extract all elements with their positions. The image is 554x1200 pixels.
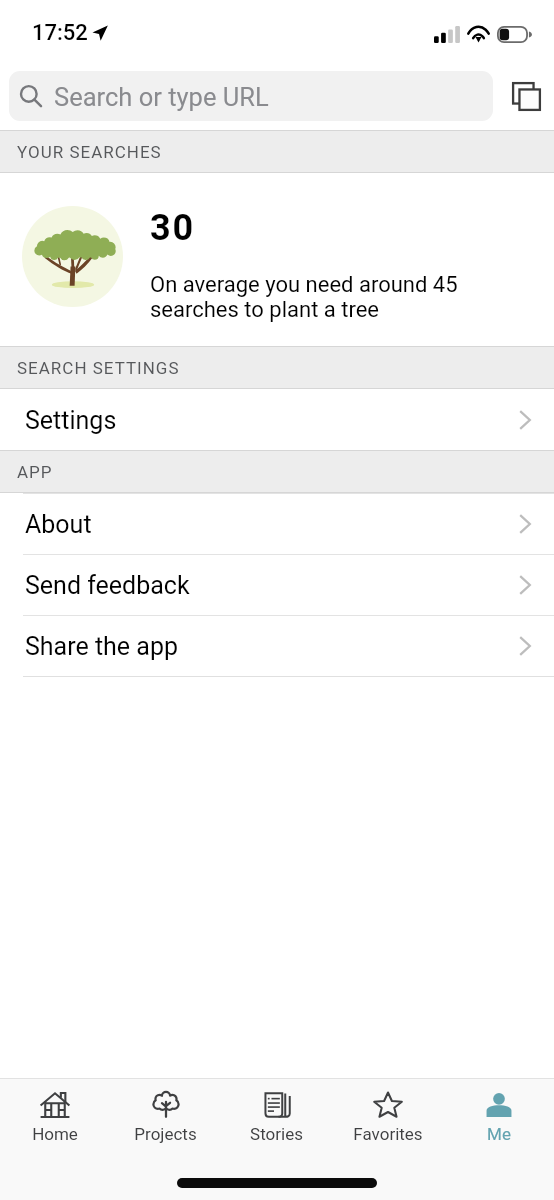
staticText: Settings (25, 406, 117, 435)
staticText: About (25, 510, 92, 539)
staticText: 30 (150, 207, 195, 249)
button[interactable]: Send feedback (0, 554, 554, 615)
staticText: Share the app (25, 632, 178, 661)
button[interactable]: About (0, 493, 554, 554)
button[interactable]: Search or type URL (9, 71, 493, 121)
staticText: On average you need around 45 searches t… (150, 272, 458, 323)
staticText: Favorites (353, 1124, 423, 1144)
staticText: Send feedback (25, 571, 190, 600)
staticText: Stories (250, 1124, 303, 1144)
button[interactable]: Tabs (501, 71, 551, 121)
button[interactable]: Stories (221, 1079, 332, 1144)
button[interactable]: Me (443, 1079, 554, 1144)
button[interactable]: Projects (110, 1079, 221, 1144)
staticText: YOUR SEARCHES (17, 142, 162, 162)
staticText: Projects (134, 1124, 197, 1144)
staticText: APP (17, 462, 53, 482)
staticText: Search or type URL (54, 82, 269, 112)
staticText: SEARCH SETTINGS (17, 358, 180, 378)
staticText: Home (32, 1124, 78, 1144)
button[interactable]: Home (0, 1079, 110, 1144)
staticText: 17:52 (32, 20, 88, 46)
staticText: Me (487, 1124, 511, 1144)
button[interactable]: Settings (0, 389, 554, 450)
button[interactable]: Share the app (0, 615, 554, 676)
button[interactable]: Favorites (332, 1079, 443, 1144)
